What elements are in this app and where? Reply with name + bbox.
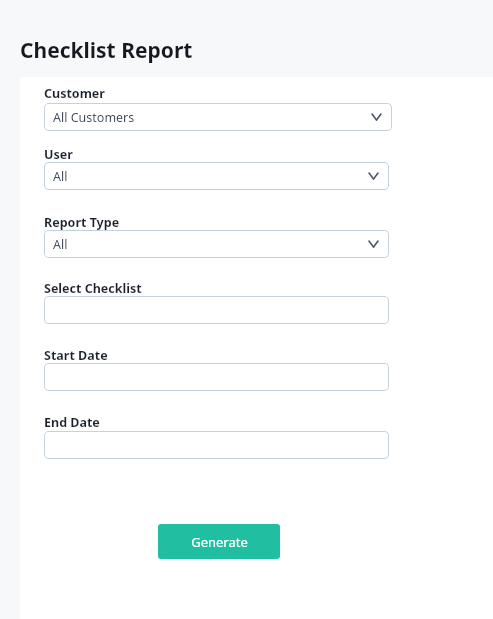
staticText: End Date [44,414,100,431]
staticText: Customer [44,85,105,102]
staticText: Select Checklist [44,280,142,297]
staticText: Start Date [44,347,108,364]
button[interactable]: Generate [158,524,280,559]
button[interactable]: Select Checklist [44,296,389,324]
staticText: User [44,146,73,163]
button[interactable]: Customer [44,103,392,131]
staticText: Checklist Report [20,36,193,65]
staticText: All [53,236,68,253]
button[interactable]: Report Type [44,230,389,258]
staticText: Report Type [44,214,120,231]
staticText: Generate [191,533,248,551]
button[interactable]: End Date [44,431,389,459]
button[interactable]: Start Date [44,363,389,391]
button[interactable]: User [44,162,389,190]
staticText: All Customers [53,109,135,126]
staticText: All [53,168,68,185]
